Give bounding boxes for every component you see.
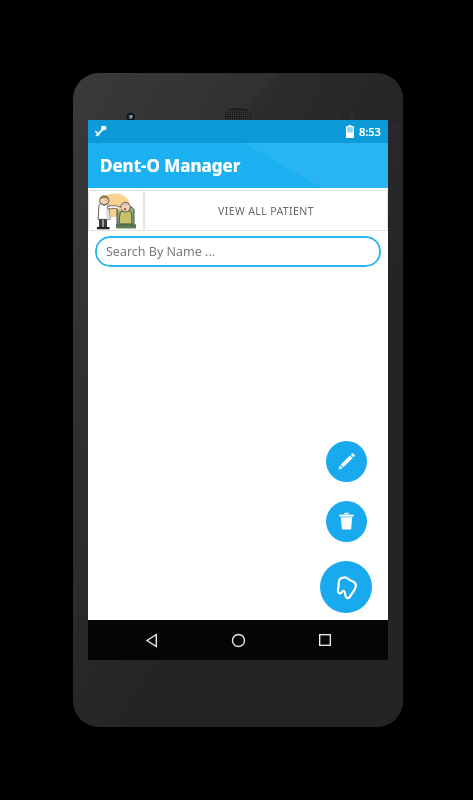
button[interactable]: Search By Name ... xyxy=(95,236,381,267)
staticText: Search By Name ... xyxy=(106,243,216,260)
button[interactable]: Back xyxy=(127,620,175,660)
button[interactable]: Delete patient xyxy=(326,501,367,542)
button[interactable]: Home xyxy=(214,620,262,660)
button[interactable]: Add patient xyxy=(320,561,372,613)
button[interactable]: VIEW ALL PATIENT xyxy=(144,190,388,231)
staticText: 8:53 xyxy=(359,124,381,139)
button[interactable]: Recent apps xyxy=(301,620,349,660)
staticText: VIEW ALL PATIENT xyxy=(218,204,314,218)
staticText: Dent-O Manager xyxy=(100,154,241,177)
button[interactable]: Edit patient xyxy=(326,441,367,482)
